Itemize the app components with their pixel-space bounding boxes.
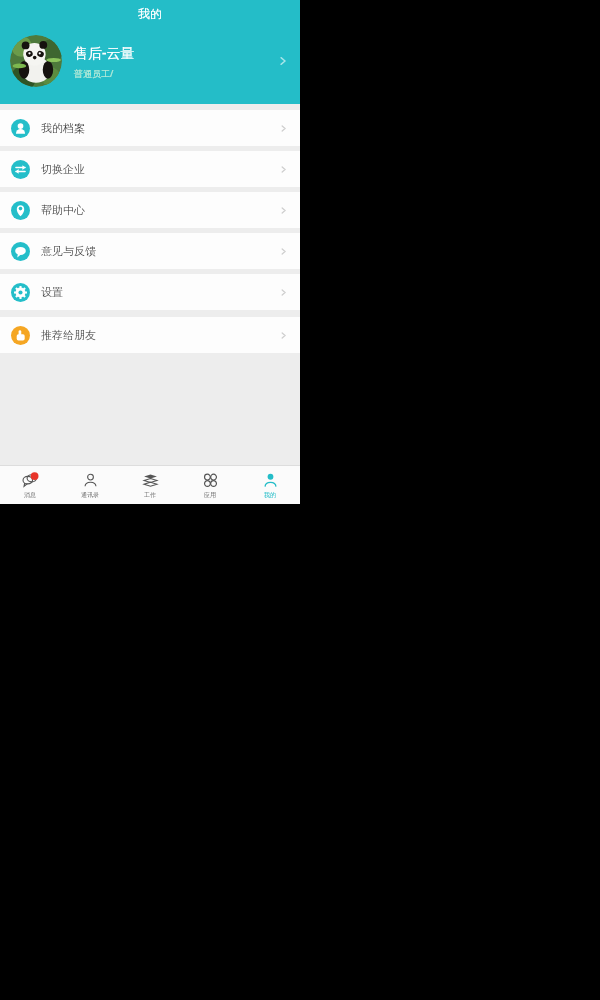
button[interactable]: 应用 bbox=[180, 466, 240, 504]
staticText: 售后-云量 bbox=[74, 43, 135, 62]
button[interactable]: 工作 bbox=[120, 466, 180, 504]
staticText: 推荐给朋友 bbox=[41, 328, 278, 342]
staticText: 帮助中心 bbox=[41, 203, 278, 217]
button[interactable]: 售后-云量 bbox=[0, 30, 300, 92]
button[interactable]: 意见与反馈 bbox=[0, 233, 300, 269]
staticText: 我的档案 bbox=[41, 121, 278, 135]
staticText: 设置 bbox=[41, 285, 278, 299]
button[interactable]: 消息 bbox=[0, 466, 60, 504]
staticText: 消息 bbox=[24, 491, 36, 499]
button[interactable]: 我的 bbox=[240, 466, 300, 504]
button[interactable]: 切换企业 bbox=[0, 151, 300, 187]
staticText: 工作 bbox=[144, 491, 156, 499]
button[interactable]: 通讯录 bbox=[60, 466, 120, 504]
staticText: 我的 bbox=[0, 6, 300, 21]
staticText: 切换企业 bbox=[41, 162, 278, 176]
button[interactable]: 推荐给朋友 bbox=[0, 317, 300, 353]
staticText: 意见与反馈 bbox=[41, 244, 278, 258]
staticText: 应用 bbox=[204, 491, 216, 499]
button[interactable]: 帮助中心 bbox=[0, 192, 300, 228]
button[interactable]: 我的档案 bbox=[0, 110, 300, 146]
button[interactable]: 设置 bbox=[0, 274, 300, 310]
staticText: 通讯录 bbox=[81, 491, 99, 499]
staticText: 普通员工/ bbox=[74, 67, 114, 79]
staticText: 我的 bbox=[264, 491, 276, 499]
